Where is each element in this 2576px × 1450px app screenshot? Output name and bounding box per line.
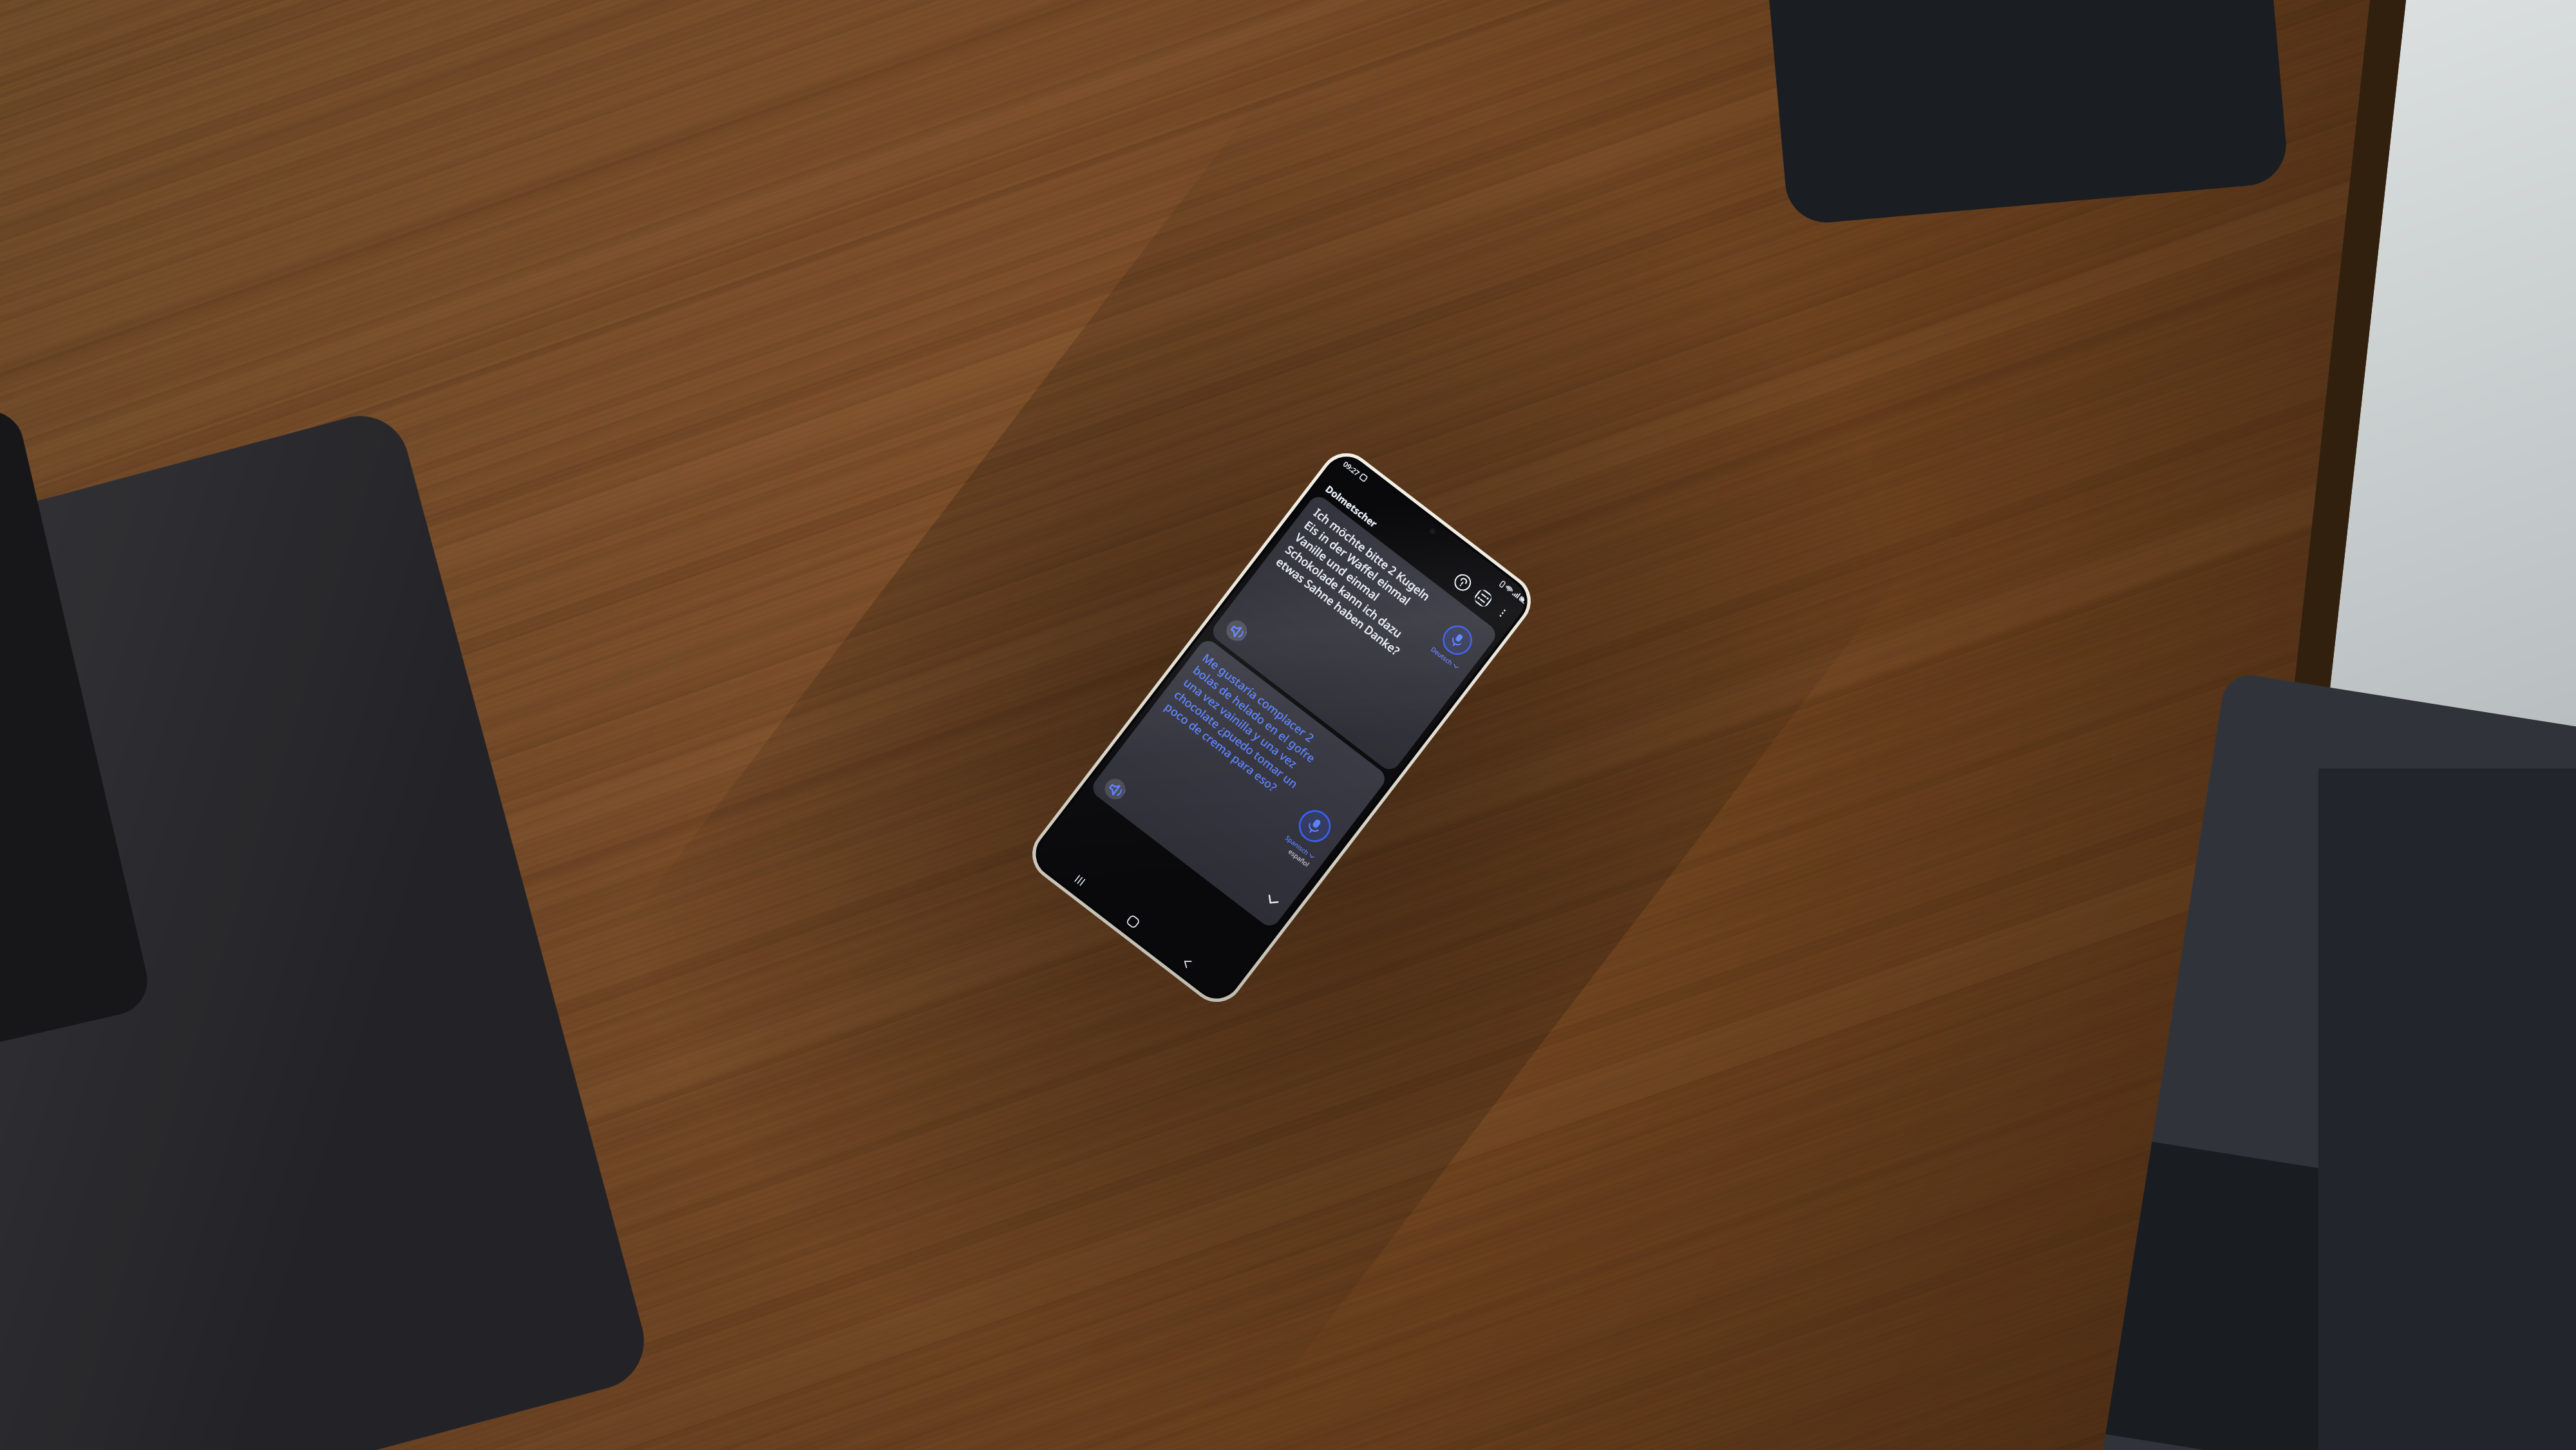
button[interactable]: Speak Spanish — [1292, 803, 1337, 849]
button[interactable]: Home — [1114, 902, 1152, 940]
staticText: Dolmetscher — [1323, 482, 1380, 530]
button[interactable]: More options — [1491, 601, 1514, 625]
button[interactable]: Collapse — [1262, 891, 1282, 910]
button[interactable]: Help — [1451, 571, 1475, 594]
staticText: Me gustaría complacer 2 bolas de helado … — [1162, 650, 1334, 807]
button[interactable]: Conversation history — [1471, 586, 1495, 610]
button[interactable]: Play German audio — [1222, 616, 1251, 645]
button[interactable]: Speak German — [1437, 619, 1478, 661]
button[interactable]: Spanisch — [1278, 833, 1317, 869]
staticText: 09:27 — [1341, 459, 1362, 478]
button[interactable]: Play Spanish audio — [1101, 775, 1130, 803]
button[interactable]: Me gustaría complacer 2 bolas de helado … — [1089, 636, 1389, 930]
staticText: español — [1287, 847, 1311, 869]
staticText: Spanisch — [1284, 833, 1311, 857]
staticText: Deutsch — [1429, 645, 1455, 667]
button[interactable]: Back — [1168, 943, 1206, 981]
staticText: Ich möchte bitte 2 Kugeln Eis in der Waf… — [1273, 505, 1446, 663]
button[interactable]: Deutsch — [1429, 645, 1461, 672]
button[interactable]: Recents — [1061, 862, 1099, 899]
button[interactable]: Ich möchte bitte 2 Kugeln Eis in der Waf… — [1209, 492, 1500, 774]
